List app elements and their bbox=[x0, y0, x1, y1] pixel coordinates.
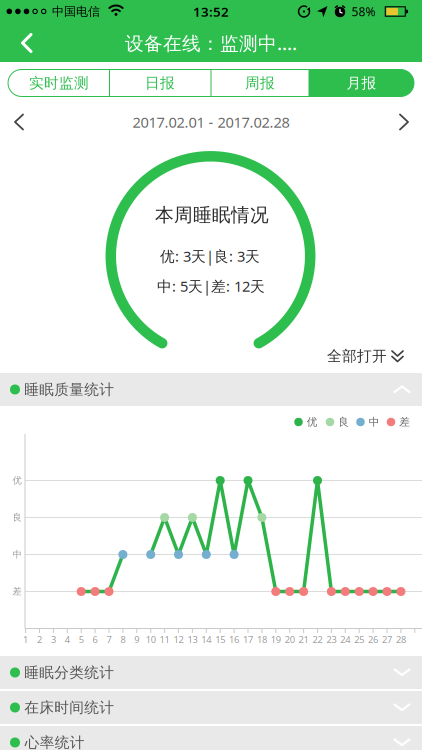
staticText: 差 bbox=[399, 415, 410, 428]
staticText: 日报 bbox=[145, 74, 175, 92]
staticText: 中: 5天|差: 12天 bbox=[157, 276, 265, 296]
staticText: 20 bbox=[285, 633, 295, 646]
staticText: 26 bbox=[368, 633, 378, 646]
staticText: 10 bbox=[146, 633, 156, 646]
staticText: 1 bbox=[23, 633, 28, 646]
button[interactable]: 日报 bbox=[110, 69, 210, 96]
staticText: 本周睡眠情况 bbox=[155, 203, 269, 226]
staticText: 睡眠分类统计 bbox=[24, 663, 114, 681]
staticText: 在床时间统计 bbox=[24, 698, 114, 716]
staticText: 中 bbox=[12, 549, 21, 560]
staticText: 14 bbox=[201, 633, 211, 646]
staticText: 24 bbox=[340, 633, 350, 646]
staticText: 3 bbox=[51, 633, 56, 646]
staticText: 睡眠质量统计 bbox=[24, 380, 114, 398]
staticText: 11 bbox=[160, 633, 170, 646]
staticText: 27 bbox=[382, 633, 392, 646]
staticText: 7 bbox=[106, 633, 111, 646]
button[interactable]: 睡眠质量统计 bbox=[0, 373, 422, 406]
button[interactable]: 在床时间统计 bbox=[0, 691, 422, 724]
staticText: 全部打开 bbox=[327, 347, 387, 365]
staticText: 中 bbox=[369, 415, 380, 428]
staticText: 设备在线：监测中.... bbox=[125, 31, 297, 55]
staticText: 8 bbox=[120, 633, 125, 646]
staticText: 58% bbox=[351, 3, 375, 19]
staticText: 月报 bbox=[346, 74, 376, 92]
staticText: 5 bbox=[79, 633, 84, 646]
staticText: 13:52 bbox=[193, 3, 229, 20]
staticText: 25 bbox=[354, 633, 364, 646]
staticText: 中国电信 bbox=[52, 4, 100, 19]
staticText: 19 bbox=[271, 633, 281, 646]
staticText: 心率统计 bbox=[25, 733, 85, 750]
button[interactable]: 周报 bbox=[212, 69, 308, 96]
staticText: 15 bbox=[215, 633, 225, 646]
staticText: 良 bbox=[338, 415, 349, 428]
staticText: 12 bbox=[173, 633, 183, 646]
button[interactable]: 心率统计 bbox=[0, 726, 422, 750]
button[interactable]: 实时监测 bbox=[9, 69, 109, 96]
staticText: 9 bbox=[134, 633, 139, 646]
staticText: 4 bbox=[65, 633, 70, 646]
staticText: 21 bbox=[299, 633, 309, 646]
button[interactable]: Previous month bbox=[13, 113, 25, 131]
button[interactable]: 月报 bbox=[309, 69, 414, 96]
staticText: 优 bbox=[307, 415, 318, 428]
staticText: 2017.02.01 - 2017.02.28 bbox=[132, 112, 289, 132]
staticText: 18 bbox=[257, 633, 267, 646]
staticText: 2 bbox=[37, 633, 42, 646]
staticText: 实时监测 bbox=[29, 74, 89, 92]
button[interactable]: 全部打开 bbox=[327, 347, 404, 365]
staticText: 17 bbox=[243, 633, 253, 646]
staticText: 周报 bbox=[245, 74, 275, 92]
staticText: 优 bbox=[12, 475, 21, 486]
button[interactable]: Next month bbox=[398, 113, 410, 131]
staticText: 23 bbox=[326, 633, 336, 646]
button[interactable]: 睡眠分类统计 bbox=[0, 656, 422, 689]
staticText: 22 bbox=[312, 633, 322, 646]
button[interactable]: Back bbox=[19, 32, 34, 53]
staticText: 差 bbox=[12, 586, 21, 597]
staticText: 28 bbox=[396, 633, 406, 646]
staticText: 6 bbox=[93, 633, 98, 646]
staticText: 良 bbox=[12, 512, 21, 523]
staticText: 优: 3天|良: 3天 bbox=[160, 246, 260, 266]
staticText: 13 bbox=[187, 633, 197, 646]
staticText: 16 bbox=[229, 633, 239, 646]
